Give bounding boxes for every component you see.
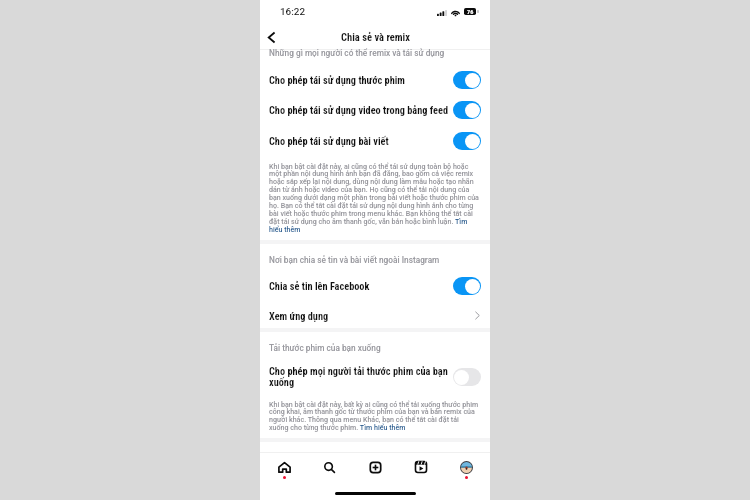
staticText: Những gì mọi người có thể remix và tái s… xyxy=(269,48,445,58)
staticText: Nơi bạn chia sẻ tin và bài viết ngoài In… xyxy=(269,255,440,265)
staticText: Cho phép mọi người tải thước phim của bạ… xyxy=(269,365,450,389)
button[interactable]: Cho phép tái sử dụng thước phim xyxy=(260,66,490,94)
staticText: Khi bạn bật cài đặt này, bất kỳ ai cũng … xyxy=(269,400,480,432)
staticText: Chia sẻ tin lên Facebook xyxy=(269,280,370,292)
button[interactable]: Home xyxy=(267,457,301,481)
button[interactable]: Xem ứng dụng xyxy=(260,304,490,330)
button[interactable]: Search xyxy=(312,457,346,481)
staticText: Khi bạn bật cài đặt này, ai cũng có thể … xyxy=(269,162,480,234)
button[interactable]: Profile xyxy=(449,457,483,481)
button[interactable]: Reels xyxy=(404,457,438,481)
button[interactable]: Cho phép tái sử dụng bài viết xyxy=(260,127,490,155)
staticText: Chia sẻ và remix xyxy=(341,31,410,43)
button[interactable]: Create xyxy=(358,457,392,481)
staticText: Cho phép tái sử dụng thước phim xyxy=(269,74,405,86)
button[interactable]: Cho phép tái sử dụng video trong bảng fe… xyxy=(260,96,490,124)
button[interactable]: Chia sẻ tin lên Facebook xyxy=(260,272,490,300)
staticText: 16:22 xyxy=(280,6,306,18)
button[interactable]: Cho phép mọi người tải thước phim của bạ… xyxy=(260,357,490,389)
staticText: Cho phép tái sử dụng video trong bảng fe… xyxy=(269,104,449,116)
button[interactable]: Back xyxy=(260,25,282,47)
staticText: Tải thước phim của bạn xuống xyxy=(269,343,381,353)
staticText: Xem ứng dụng xyxy=(269,310,329,322)
staticText: Cho phép tái sử dụng bài viết xyxy=(269,135,389,147)
staticText: 76 xyxy=(467,8,474,15)
